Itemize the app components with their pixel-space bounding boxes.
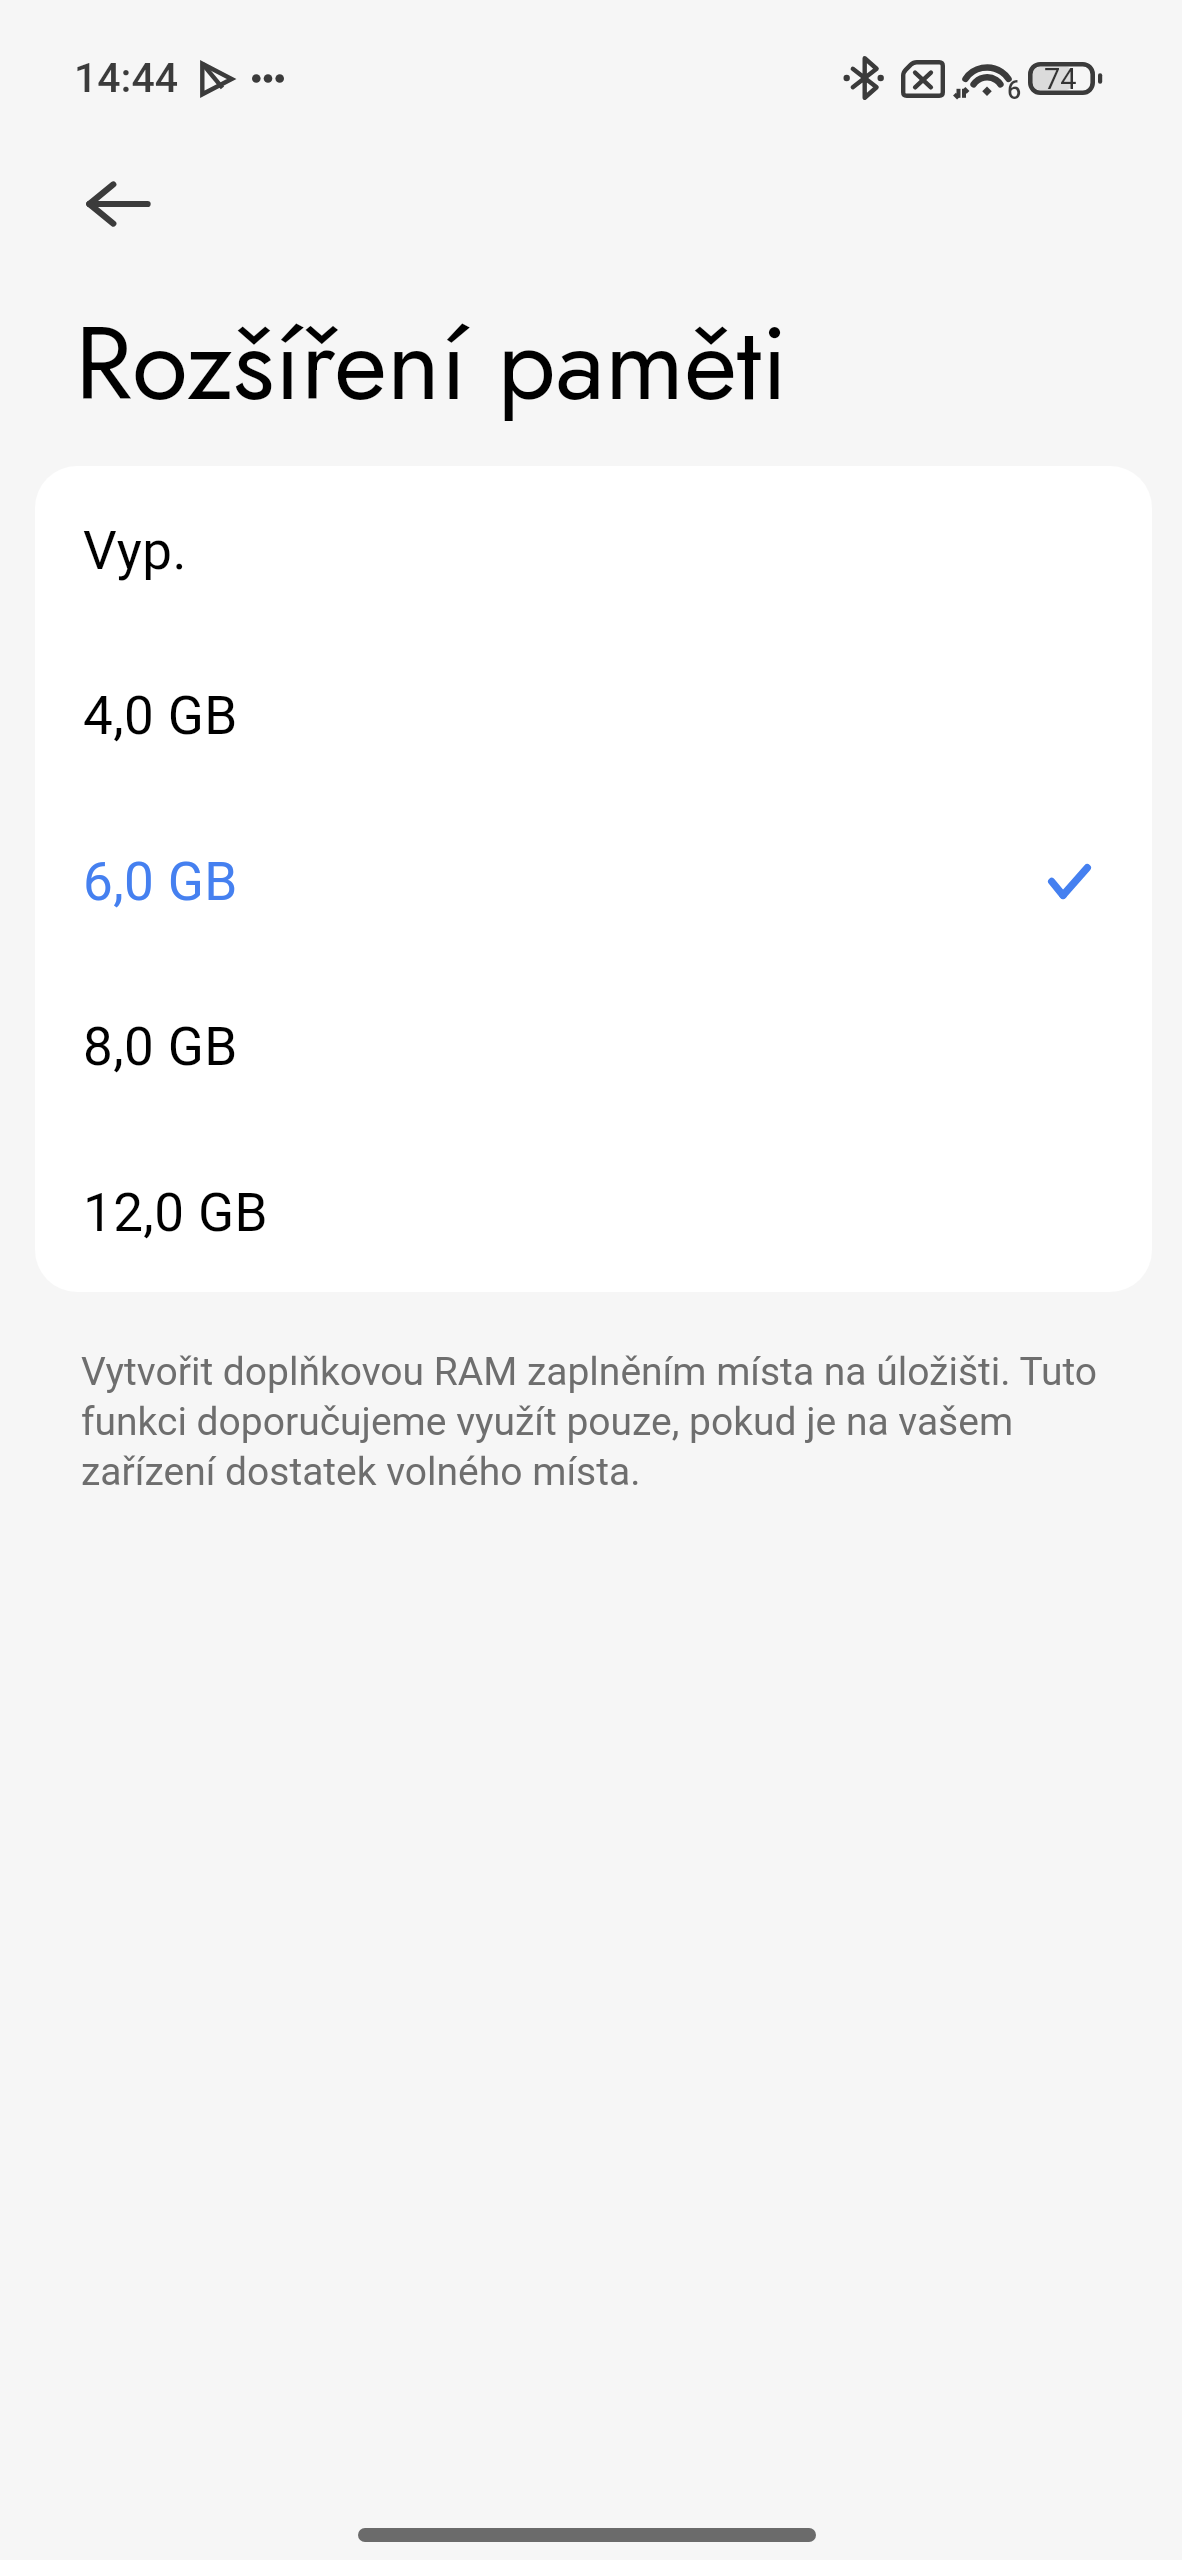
staticText: 6 bbox=[1007, 76, 1022, 105]
button[interactable]: 6,0 GB bbox=[35, 799, 1152, 964]
button[interactable]: Back bbox=[76, 161, 161, 246]
staticText: Rozšíření paměti bbox=[75, 290, 788, 437]
button[interactable]: 4,0 GB bbox=[35, 633, 1152, 798]
staticText: 6,0 GB bbox=[83, 851, 238, 913]
button[interactable]: Vyp. bbox=[35, 468, 1152, 633]
staticText: 8,0 GB bbox=[83, 1016, 238, 1078]
staticText: 4,0 GB bbox=[83, 685, 238, 747]
staticText: Vyp. bbox=[83, 520, 187, 582]
staticText: Vytvořit doplňkovou RAM zaplněním místa … bbox=[81, 1345, 1111, 1495]
staticText: 12,0 GB bbox=[83, 1182, 268, 1244]
staticText: 14:44 bbox=[74, 54, 179, 102]
button[interactable]: 8,0 GB bbox=[35, 964, 1152, 1129]
button[interactable]: 12,0 GB bbox=[35, 1130, 1152, 1292]
staticText: 74 bbox=[1044, 62, 1077, 95]
